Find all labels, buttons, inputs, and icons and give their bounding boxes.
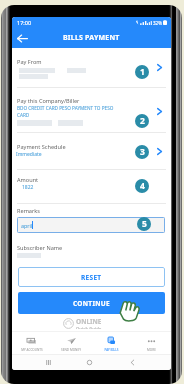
staticText: Payment Schedule [17,143,66,151]
staticText: BDO CREDIT CARD PESO PAYMENT TO PESO CAR… [17,105,114,119]
button[interactable]: CONTINUE [18,292,165,314]
button[interactable]: Home [77,354,101,370]
button[interactable]: SEND MONEY [51,331,91,354]
staticText: MY ACCOUNTS [21,348,43,352]
staticText: PAY BILLS [104,348,119,352]
staticText: Remarks [17,207,40,215]
button[interactable]: Payment Schedule [12,141,171,170]
button[interactable]: april [17,217,165,233]
button[interactable]: Amount [12,174,171,204]
staticText: 2 [140,115,145,127]
button[interactable]: RESET [18,267,165,287]
staticText: Immediate [16,151,42,158]
staticText: BILLS PAYMENT [63,33,120,43]
staticText: 1822 [22,184,34,191]
staticText: april [21,222,33,229]
staticText: SEND MONEY [61,348,81,352]
staticText: Pay From [17,58,42,66]
button[interactable]: MORE [131,331,171,354]
staticText: 1 [140,66,145,78]
button[interactable]: MY ACCOUNTS [12,331,51,354]
staticText: 3 [140,146,145,158]
staticText: 17:00 [17,19,32,26]
staticText: RESET [81,273,102,282]
staticText: MORE [147,348,156,352]
staticText: CONTINUE [73,299,110,308]
staticText: Pay this Company/Biller [17,97,80,105]
button[interactable]: Recents [36,354,61,370]
button[interactable]: Pay From [12,55,171,88]
staticText: ONLINE [76,317,102,326]
staticText: 4 [140,180,145,192]
staticText: Subscriber Name [17,244,63,252]
button[interactable]: Back [120,354,144,370]
button[interactable]: PAY BILLS [91,331,131,354]
staticText: 32% [153,20,162,26]
staticText: Quick Guide [76,326,102,329]
staticText: Amount [17,176,39,184]
button[interactable]: Pay this Company/Biller [12,95,171,133]
staticText: 5 [142,218,147,230]
button[interactable]: Back [12,28,32,48]
